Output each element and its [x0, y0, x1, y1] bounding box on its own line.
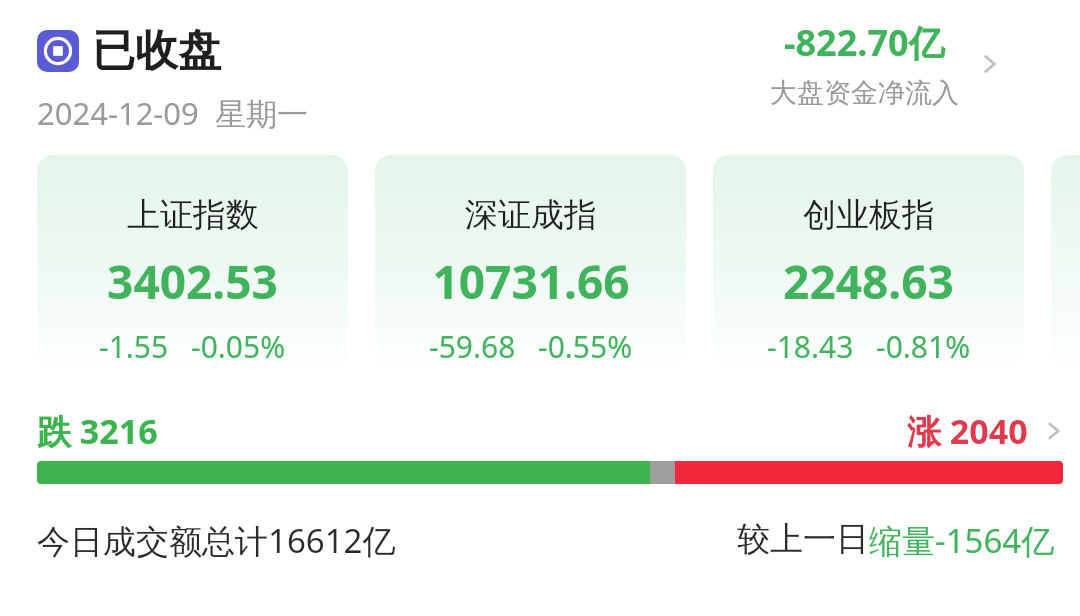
staticText: 缩量-1564亿	[869, 518, 1055, 563]
staticText: 深证成指	[465, 194, 597, 236]
staticText: -18.43	[767, 326, 854, 367]
staticText: 创业板指	[803, 194, 935, 236]
staticText: 3402.53	[107, 250, 278, 313]
staticText: 10731.66	[432, 250, 630, 313]
staticText: -1.55	[99, 326, 169, 367]
other: More market breadth	[1040, 417, 1068, 445]
staticText: 已收盘	[92, 24, 221, 78]
staticText: 今日成交额总计16612亿	[37, 518, 396, 563]
button[interactable]: -822.70亿	[770, 18, 1005, 110]
staticText: -0.05%	[191, 326, 286, 367]
button[interactable]: 深证成指	[375, 155, 686, 368]
staticText: -822.70亿	[784, 18, 945, 67]
button[interactable]	[37, 461, 1063, 484]
staticText: 跌 3216	[37, 408, 158, 454]
staticText: 2024-12-09 星期一	[37, 92, 308, 134]
staticText: 2248.63	[783, 250, 954, 313]
button[interactable]: 今日成交额总计16612亿	[0, 512, 1080, 568]
staticText: 涨 2040	[907, 408, 1028, 454]
staticText: -0.55%	[538, 326, 633, 367]
staticText: -0.81%	[876, 326, 971, 367]
other: Market closed	[37, 30, 79, 72]
staticText: 大盘资金净流入	[770, 76, 959, 110]
staticText: -59.68	[429, 326, 516, 367]
button[interactable]: 跌 3216	[0, 408, 1080, 454]
button[interactable]: Market closed	[37, 24, 221, 78]
button[interactable]: 上证指数	[37, 155, 348, 368]
staticText: 上证指数	[127, 194, 259, 236]
button[interactable]	[1051, 155, 1080, 368]
staticText: 较上一日	[737, 518, 869, 560]
button[interactable]: 创业板指	[713, 155, 1024, 368]
other: More capital flow	[975, 49, 1005, 79]
